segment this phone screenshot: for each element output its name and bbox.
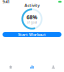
button[interactable]: Activity <box>21 62 43 72</box>
staticText: of goal <box>27 21 37 24</box>
staticText: 68% <box>26 14 37 21</box>
staticText: 9:41 <box>2 0 9 4</box>
button[interactable]: Profile <box>43 62 64 72</box>
staticText: Start Workout <box>18 32 46 37</box>
button[interactable]: Start Workout <box>2 32 61 37</box>
staticText: Activity <box>24 3 39 8</box>
button[interactable]: Home <box>0 62 21 72</box>
